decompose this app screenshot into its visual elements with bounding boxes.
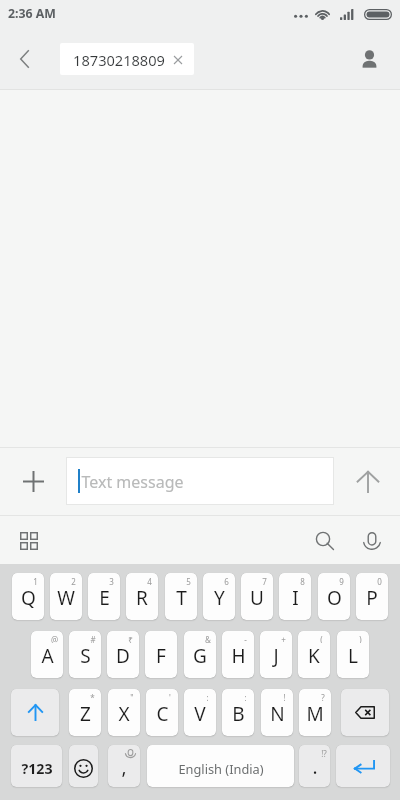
button[interactable]: , xyxy=(108,745,140,787)
button[interactable]: _ xyxy=(145,631,177,678)
button[interactable]: ; xyxy=(222,689,254,736)
button[interactable]: ₹ xyxy=(107,631,139,678)
staticText: , xyxy=(121,754,127,780)
button[interactable]: 2 xyxy=(50,573,82,620)
button[interactable]: 6 xyxy=(203,573,235,620)
staticText: ?123 xyxy=(21,759,53,778)
button[interactable] xyxy=(11,689,59,736)
button[interactable]: 0 xyxy=(356,573,388,620)
staticText: L xyxy=(348,643,358,669)
button[interactable]: Contact details xyxy=(347,34,391,80)
staticText: 7 xyxy=(262,576,267,585)
button[interactable]: 9 xyxy=(318,573,350,620)
staticText: U xyxy=(250,585,264,611)
staticText: ₹ xyxy=(128,634,133,643)
staticText: & xyxy=(205,634,211,643)
button[interactable]: 8 xyxy=(279,573,311,620)
staticText: ' xyxy=(169,692,171,701)
button[interactable]: Add attachment xyxy=(10,458,57,505)
staticText: # xyxy=(90,634,96,643)
button[interactable]: ' xyxy=(146,689,178,736)
staticText: 8 xyxy=(300,576,305,585)
staticText: Y xyxy=(214,585,225,611)
staticText: 3 xyxy=(109,576,114,585)
staticText: Z xyxy=(80,701,91,727)
staticText: + xyxy=(281,634,286,643)
button[interactable]: & xyxy=(184,631,216,678)
staticText: 2 xyxy=(71,576,76,585)
button[interactable]: 3 xyxy=(88,573,120,620)
staticText: - xyxy=(244,634,247,643)
staticText: A xyxy=(41,643,54,669)
button[interactable]: ) xyxy=(337,631,369,678)
staticText: English (India) xyxy=(178,760,264,777)
staticText: I xyxy=(292,585,299,611)
staticText: " xyxy=(130,692,134,701)
staticText: G xyxy=(193,643,207,669)
staticText: 5 xyxy=(186,576,191,585)
staticText: 4 xyxy=(147,576,152,585)
staticText: . xyxy=(312,754,318,780)
staticText: C xyxy=(156,701,169,727)
staticText: V xyxy=(194,701,206,727)
staticText: B xyxy=(232,701,245,727)
button[interactable]: # xyxy=(69,631,101,678)
button[interactable]: + xyxy=(260,631,292,678)
staticText: W xyxy=(57,585,75,611)
button[interactable]: * xyxy=(69,689,101,736)
button[interactable]: 1 xyxy=(12,573,44,620)
staticText: @ xyxy=(51,634,58,643)
button[interactable] xyxy=(341,689,389,736)
button[interactable]: 5 xyxy=(165,573,197,620)
button[interactable]: Voice input xyxy=(355,524,388,557)
staticText: O xyxy=(327,585,342,611)
staticText: J xyxy=(273,643,279,669)
staticText: ? xyxy=(321,692,325,701)
button[interactable]: Search xyxy=(308,524,341,557)
staticText: 1 xyxy=(33,576,38,585)
staticText: D xyxy=(116,643,130,669)
staticText: 2:36 AM xyxy=(8,5,56,22)
button[interactable]: : xyxy=(184,689,216,736)
button[interactable] xyxy=(336,745,390,787)
staticText: P xyxy=(366,585,378,611)
button[interactable]: English (India) xyxy=(147,745,294,787)
staticText: K xyxy=(308,643,320,669)
staticText: T xyxy=(176,585,187,611)
staticText: S xyxy=(80,643,91,669)
button[interactable]: ?123 xyxy=(11,745,62,787)
button[interactable]: 7 xyxy=(241,573,273,620)
button[interactable]: Apps xyxy=(12,524,46,557)
staticText: M xyxy=(306,701,324,727)
button[interactable]: !? xyxy=(299,745,330,787)
staticText: ) xyxy=(359,634,362,643)
button[interactable]: ? xyxy=(299,689,331,736)
staticText: 0 xyxy=(377,576,382,585)
staticText: R xyxy=(136,585,148,611)
button[interactable]: " xyxy=(108,689,140,736)
button[interactable]: Back xyxy=(3,36,45,82)
button[interactable]: ! xyxy=(261,689,293,736)
button[interactable]: ( xyxy=(298,631,330,678)
staticText: F xyxy=(156,643,166,669)
button[interactable]: 4 xyxy=(126,573,158,620)
staticText: H xyxy=(231,643,246,669)
staticText: ( xyxy=(320,634,323,643)
staticText: 18730218809 xyxy=(73,50,165,70)
button[interactable]: 18730218809 xyxy=(60,43,194,75)
staticText: Q xyxy=(21,585,36,611)
button[interactable]: Text message xyxy=(66,457,334,505)
staticText: : xyxy=(206,692,209,701)
button[interactable]: Send message xyxy=(345,458,390,505)
staticText: N xyxy=(270,701,285,727)
button[interactable]: - xyxy=(222,631,254,678)
staticText: !? xyxy=(321,748,327,757)
staticText: ! xyxy=(283,692,286,701)
button[interactable] xyxy=(69,745,98,787)
staticText: E xyxy=(99,585,110,611)
staticText: 9 xyxy=(339,576,344,585)
button[interactable]: @ xyxy=(31,631,63,678)
staticText: X xyxy=(118,701,130,727)
staticText: Text message xyxy=(81,471,184,493)
